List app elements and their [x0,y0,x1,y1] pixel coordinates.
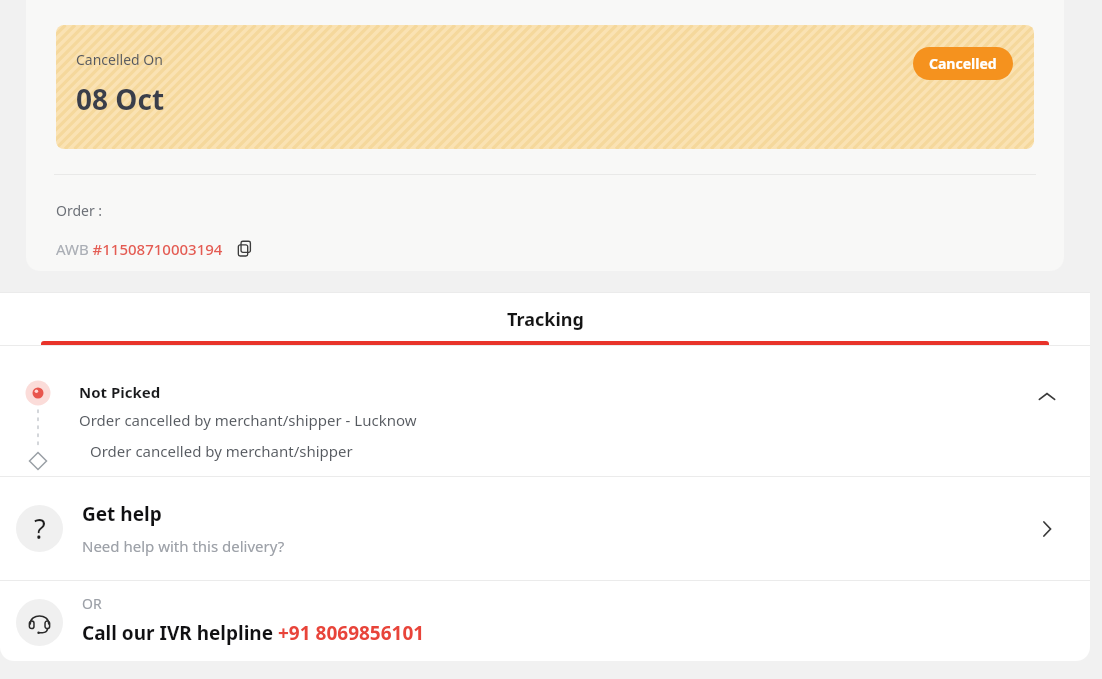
button[interactable]: ? [0,477,1090,580]
button[interactable]: Collapse tracking details [1032,382,1062,412]
staticText: OR [82,594,102,613]
staticText: Cancelled On [76,50,163,69]
staticText: Call our IVR helpline +91 8069856101 [82,620,425,646]
staticText: Order cancelled by merchant/shipper - Lu… [79,410,417,430]
staticText: 08 Oct [76,80,165,118]
staticText: Cancelled [929,54,997,73]
staticText: AWB #11508710003194 [56,239,223,259]
button[interactable]: Not Picked [0,346,1090,476]
staticText: ? [34,510,46,547]
staticText: Need help with this delivery? [82,536,285,556]
button[interactable]: Tracking [0,293,1090,345]
staticText: Get help [82,501,162,527]
button[interactable]: Cancelled [913,47,1013,80]
staticText: Order cancelled by merchant/shipper [90,441,353,461]
button[interactable]: OR [0,581,1090,661]
staticText: Tracking [507,307,584,332]
staticText: Not Picked [79,382,161,402]
button[interactable]: Open help [1032,514,1062,544]
button[interactable]: Copy AWB number [233,237,257,261]
staticText: Order : [56,201,103,220]
